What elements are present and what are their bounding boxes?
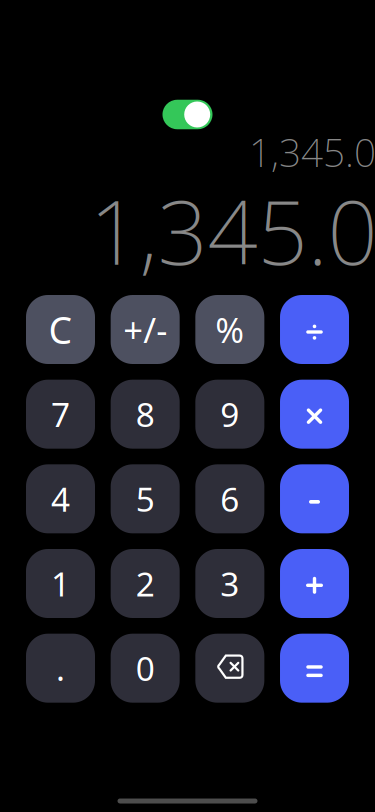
- staticText: .: [56, 646, 65, 690]
- staticText: 7: [51, 392, 70, 436]
- button[interactable]: 5: [111, 464, 180, 533]
- button[interactable]: Decimal point: [26, 634, 95, 703]
- button[interactable]: 9: [195, 380, 264, 449]
- staticText: 1: [51, 561, 70, 606]
- button[interactable]: 0: [111, 634, 180, 703]
- staticText: 5: [136, 477, 155, 521]
- button[interactable]: 7: [26, 380, 95, 449]
- button[interactable]: 8: [111, 380, 180, 449]
- button[interactable]: Delete: [195, 634, 264, 703]
- button[interactable]: Plus minus: [111, 295, 180, 364]
- staticText: 9: [220, 392, 239, 436]
- button[interactable]: Multiply: [280, 380, 349, 449]
- staticText: %: [215, 306, 244, 352]
- staticText: C: [48, 305, 72, 354]
- button[interactable]: Equals: [280, 634, 349, 703]
- button[interactable]: Minus: [280, 464, 349, 533]
- button[interactable]: Clear: [26, 295, 95, 364]
- staticText: 0: [136, 646, 155, 690]
- staticText: 3: [220, 561, 239, 606]
- button[interactable]: Plus: [280, 549, 349, 618]
- staticText: 1,345.0: [249, 126, 375, 178]
- button[interactable]: 3: [195, 549, 264, 618]
- staticText: 8: [136, 392, 155, 436]
- button[interactable]: Scientific mode: [162, 100, 212, 129]
- button[interactable]: Divide: [280, 295, 349, 364]
- button[interactable]: Percent: [195, 295, 264, 364]
- staticText: 2: [136, 561, 155, 606]
- staticText: +/-: [123, 306, 167, 352]
- button[interactable]: 1: [26, 549, 95, 618]
- button[interactable]: 2: [111, 549, 180, 618]
- staticText: 4: [51, 477, 70, 521]
- staticText: 6: [220, 477, 239, 521]
- button[interactable]: 6: [195, 464, 264, 533]
- staticText: 1,345.0: [89, 172, 375, 289]
- button[interactable]: 4: [26, 464, 95, 533]
